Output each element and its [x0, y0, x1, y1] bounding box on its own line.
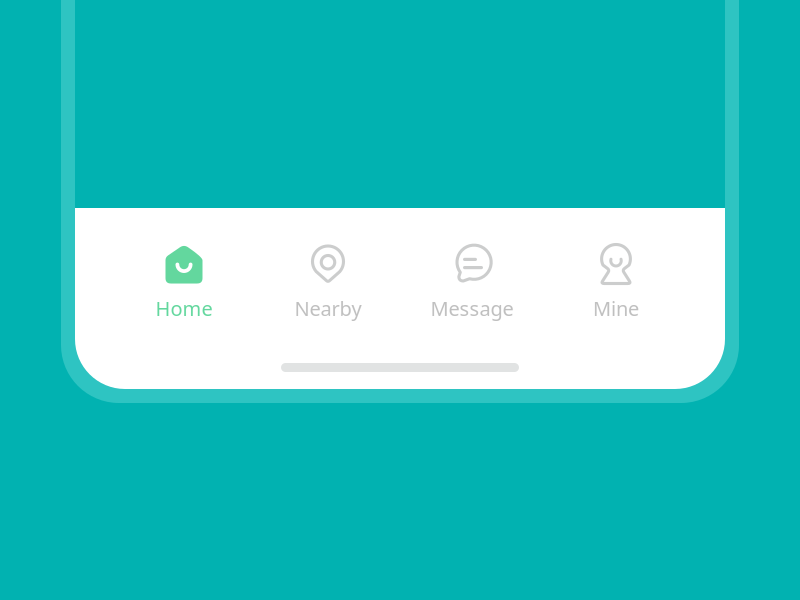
- staticText: Message: [430, 295, 513, 322]
- button[interactable]: Mine: [544, 208, 688, 348]
- staticText: Home: [155, 295, 212, 322]
- button[interactable]: Home: [112, 208, 256, 348]
- button[interactable]: Message: [400, 208, 544, 348]
- staticText: Mine: [593, 295, 639, 322]
- staticText: Nearby: [294, 295, 361, 322]
- button[interactable]: Nearby: [256, 208, 400, 348]
